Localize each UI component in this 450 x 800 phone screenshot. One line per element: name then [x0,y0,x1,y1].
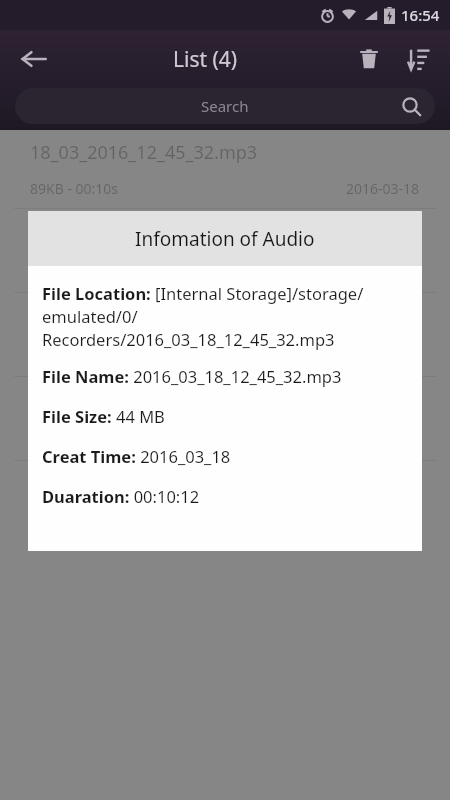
staticText: 2016-03-18 [346,179,420,198]
button[interactable]: Sort [394,34,444,84]
staticText: File Size: 44 MB [42,405,165,427]
button[interactable]: 17_03_2016_09_21_05.mp3 [0,298,450,382]
staticText: File Location: [Internal Storage]/storag… [42,282,364,351]
button[interactable]: Delete [344,34,394,84]
button[interactable]: 18_03_2016_12_40_11.mp3 [0,214,450,298]
staticText: 16_03_2016_18_02_44.mp3 [30,392,258,417]
staticText: Search [201,96,249,116]
staticText: File Name: 2016_03_18_12_45_32.mp3 [42,365,342,387]
staticText: 89KB - 00:10s [30,179,119,198]
staticText: 2016-03-17 [346,263,420,282]
button[interactable]: Back [8,33,60,85]
staticText: Infomation of Audio [135,226,315,252]
button[interactable]: 16_03_2016_18_02_44.mp3 [0,382,450,466]
staticText: 72KB - 00:08s [30,263,119,282]
staticText: 16:54 [401,5,440,25]
staticText: 17_03_2016_09_21_05.mp3 [30,308,258,333]
staticText: 18_03_2016_12_40_11.mp3 [30,224,258,249]
button[interactable]: Search [15,88,435,124]
button[interactable]: 18_03_2016_12_45_32.mp3 [0,130,450,214]
staticText: Duaration: 00:10:12 [42,485,200,507]
staticText: 18_03_2016_12_45_32.mp3 [30,140,258,165]
staticText: List (4) [173,45,238,74]
staticText: Creat Time: 2016_03_18 [42,445,231,467]
